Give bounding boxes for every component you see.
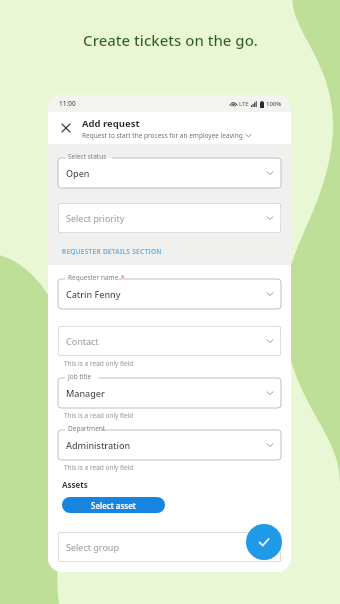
staticText: LTE	[239, 100, 249, 108]
staticText: Assets	[62, 479, 88, 490]
staticText: This is a read only field	[64, 359, 134, 368]
button[interactable]: Catrin Fenny	[58, 273, 281, 309]
staticText: Select status	[68, 152, 107, 161]
staticText: Manager	[66, 387, 105, 399]
staticText: Catrin Fenny	[66, 288, 121, 300]
staticText: Job title	[68, 372, 92, 381]
button[interactable]: Administration	[58, 424, 281, 460]
button[interactable]: Manager	[58, 372, 281, 408]
button[interactable]: Contact	[58, 320, 281, 356]
staticText: Administration	[66, 439, 131, 451]
staticText: Select group	[66, 541, 119, 553]
staticText: This is a read only field	[64, 411, 134, 420]
staticText: Create tickets on the go.	[83, 30, 258, 50]
staticText: Open	[66, 167, 90, 179]
staticText: REQUESTER DETAILS SECTION	[62, 247, 162, 256]
staticText: Select asset	[91, 500, 136, 511]
staticText: Department	[68, 424, 106, 433]
button[interactable]: Close	[56, 118, 76, 138]
button[interactable]: Submit request	[246, 524, 282, 560]
button[interactable]: Select priority	[58, 197, 281, 233]
staticText: Request to start the process for an empl…	[82, 131, 243, 140]
staticText: Requester name	[68, 273, 119, 282]
staticText: This is a read only field	[64, 463, 134, 472]
button[interactable]: Select group	[58, 526, 281, 562]
staticText: Add request	[82, 117, 140, 130]
button[interactable]: Open	[58, 152, 281, 188]
staticText: *	[121, 273, 125, 282]
staticText: 100%	[266, 100, 282, 108]
button[interactable]: Select asset	[62, 497, 165, 513]
staticText: Contact	[66, 335, 99, 347]
staticText: 11:00	[59, 99, 76, 108]
staticText: Select priority	[66, 212, 125, 224]
